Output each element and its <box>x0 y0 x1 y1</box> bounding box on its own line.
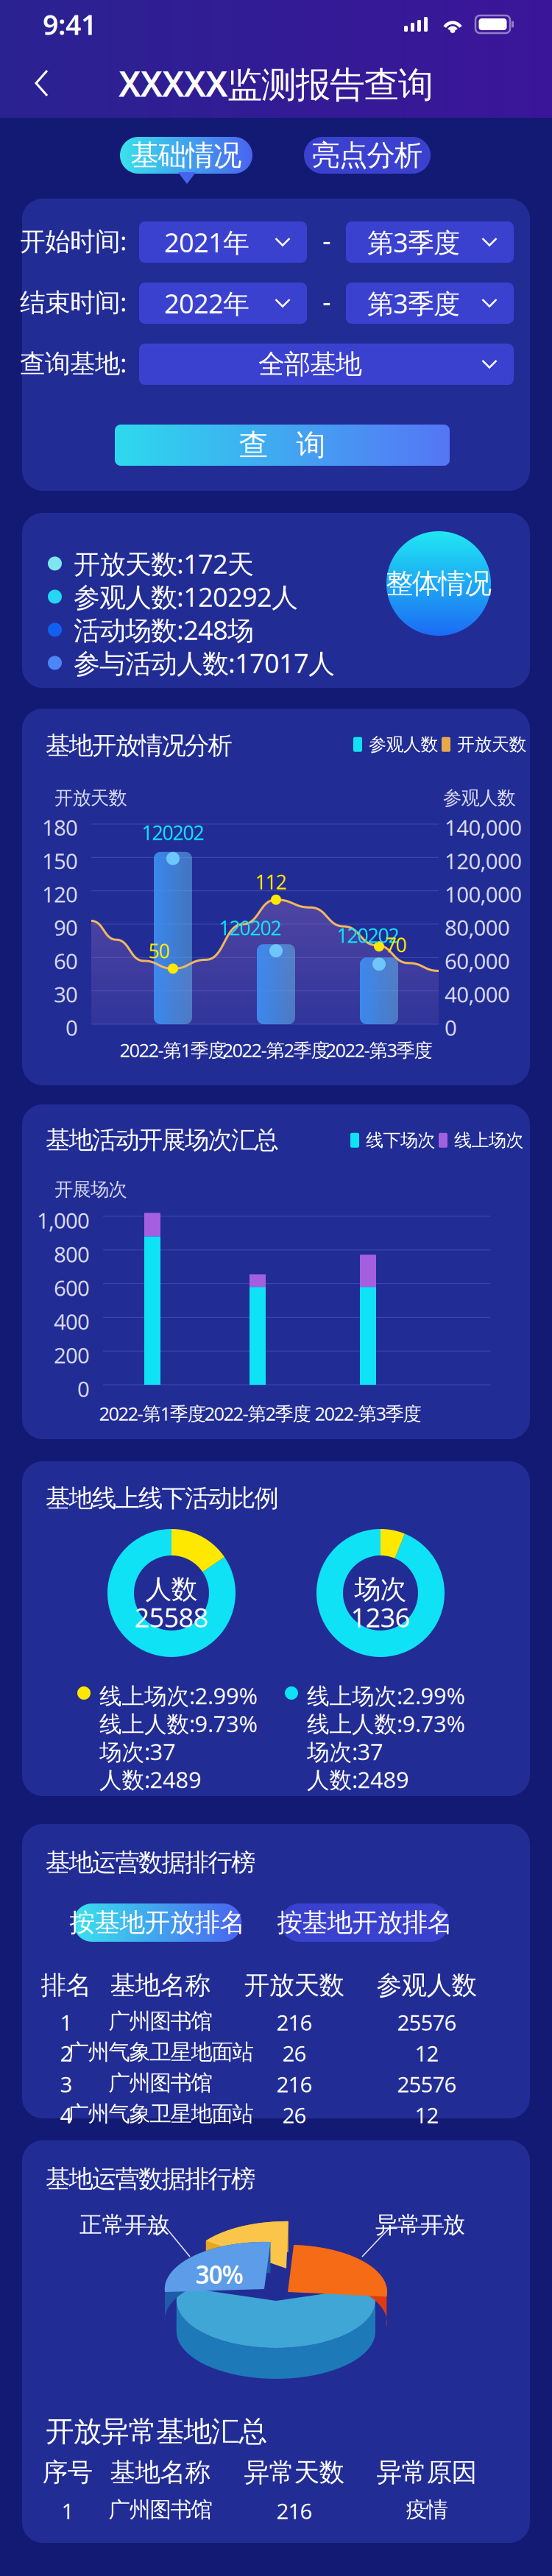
button[interactable]: 亮点分析 <box>304 137 431 174</box>
staticText: 2 <box>60 2039 72 2068</box>
staticText: 广州图书馆 <box>109 2008 212 2034</box>
staticText: 开放天数 <box>54 787 127 809</box>
staticText: 线上场次:2.99% <box>99 1681 257 1710</box>
staticText: 26 <box>282 2039 307 2068</box>
staticText: 参观人数 <box>443 787 516 809</box>
staticText: 0 <box>77 1374 90 1403</box>
button[interactable]: 第3季度 <box>346 221 514 263</box>
staticText: 线上人数:9.73% <box>307 1709 465 1738</box>
staticText: 异常开放 <box>375 2211 466 2239</box>
staticText: 120,000 <box>445 846 522 875</box>
staticText: 结束时间: <box>20 285 127 319</box>
staticText: 人数:2489 <box>307 1764 409 1794</box>
staticText: 80,000 <box>445 913 510 942</box>
staticText: 40,000 <box>445 980 510 1009</box>
staticText: 线上场次 <box>454 1129 524 1151</box>
staticText: 400 <box>54 1307 90 1336</box>
staticText: 开展场次 <box>54 1178 127 1201</box>
staticText: 排名 <box>41 1970 92 2001</box>
staticText: 120202 <box>337 922 399 948</box>
staticText: 216 <box>276 2008 312 2037</box>
staticText: 90 <box>54 913 78 942</box>
staticText: 12 <box>415 2101 439 2129</box>
staticText: 200 <box>54 1341 90 1369</box>
staticText: 基地开放情况分析 <box>46 731 232 761</box>
staticText: 12 <box>415 2039 439 2068</box>
staticText: 50 <box>148 938 170 964</box>
staticText: 广州图书馆 <box>109 2497 212 2523</box>
staticText: 0 <box>445 1013 457 1042</box>
staticText: 广州气象卫星地面站 <box>67 2101 254 2127</box>
staticText: 25576 <box>397 2070 457 2098</box>
staticText: 2022-第2季度 <box>204 1401 311 1426</box>
staticText: 基础情况 <box>130 138 242 173</box>
staticText: 正常开放 <box>79 2211 170 2239</box>
staticText: XXXXX监测报告查询 <box>118 60 434 107</box>
staticText: 查询基地: <box>20 346 127 380</box>
button[interactable]: 基础情况 <box>120 137 252 174</box>
button[interactable]: 全部基地 <box>139 344 514 385</box>
staticText: 广州气象卫星地面站 <box>67 2039 254 2065</box>
staticText: 1 <box>60 2008 72 2037</box>
staticText: 开放天数 <box>457 734 527 755</box>
staticText: 活动场数:248场 <box>74 612 254 647</box>
button[interactable]: 第3季度 <box>346 283 514 324</box>
button[interactable]: 按基地开放排名 <box>74 1903 241 1942</box>
staticText: 参与活动人数:17017人 <box>74 645 335 680</box>
staticText: 基地线上线下活动比例 <box>46 1483 279 1513</box>
staticText: 按基地开放排名 <box>277 1907 453 1938</box>
staticText: 2021年 <box>164 224 250 260</box>
staticText: 基地运营数据排行榜 <box>46 2164 255 2194</box>
staticText: 基地活动开展场次汇总 <box>46 1125 279 1155</box>
staticText: 600 <box>54 1273 90 1302</box>
staticText: 场次:37 <box>99 1736 176 1766</box>
staticText: 26 <box>282 2101 307 2129</box>
staticText: 2022-第3季度 <box>315 1401 421 1426</box>
button[interactable]: 2021年 <box>139 221 307 263</box>
button[interactable]: 2022年 <box>139 283 307 324</box>
staticText: 2022年 <box>164 286 250 321</box>
staticText: 2022-第1季度 <box>120 1037 226 1062</box>
staticText: 场次 <box>354 1573 407 1606</box>
staticText: - <box>322 222 331 257</box>
staticText: 基地名称 <box>110 2457 211 2488</box>
staticText: 150 <box>42 846 78 875</box>
staticText: 人数:2489 <box>99 1764 202 1794</box>
staticText: 9:41 <box>43 6 96 43</box>
staticText: 25576 <box>397 2008 457 2037</box>
staticText: 序号 <box>42 2457 93 2488</box>
staticText: 人数 <box>145 1573 198 1606</box>
staticText: 216 <box>276 2070 312 2098</box>
staticText: 场次:37 <box>307 1736 383 1766</box>
staticText: 开放天数 <box>244 1970 345 2001</box>
staticText: 广州图书馆 <box>109 2070 212 2096</box>
staticText: 线下场次 <box>366 1129 435 1151</box>
staticText: 30% <box>195 2258 243 2291</box>
staticText: 800 <box>54 1240 90 1268</box>
button[interactable]: 返回 <box>0 52 71 115</box>
staticText: 按基地开放排名 <box>70 1907 245 1938</box>
staticText: 60,000 <box>445 946 510 975</box>
staticText: 112 <box>255 869 287 895</box>
staticText: 120 <box>42 880 78 908</box>
button[interactable]: 按基地开放排名 <box>281 1903 449 1942</box>
staticText: 开始时间: <box>20 224 127 258</box>
staticText: 3 <box>60 2070 72 2098</box>
staticText: 全部基地 <box>258 348 362 380</box>
staticText: 30 <box>54 980 78 1009</box>
staticText: 第3季度 <box>367 286 460 321</box>
staticText: 0 <box>66 1013 78 1042</box>
button[interactable]: 查 询 <box>115 425 450 466</box>
staticText: 异常天数 <box>244 2457 345 2488</box>
staticText: 开放异常基地汇总 <box>46 2414 268 2449</box>
staticText: 100,000 <box>445 880 522 908</box>
staticText: 60 <box>54 946 78 975</box>
staticText: - <box>322 283 331 318</box>
staticText: 基地运营数据排行榜 <box>46 1848 255 1878</box>
staticText: 异常原因 <box>376 2457 477 2488</box>
staticText: 2022-第3季度 <box>326 1037 432 1062</box>
staticText: 1 <box>61 2497 74 2525</box>
staticText: 2022-第1季度 <box>99 1401 206 1426</box>
staticText: 整体情况 <box>386 567 491 600</box>
staticText: 216 <box>276 2497 312 2525</box>
